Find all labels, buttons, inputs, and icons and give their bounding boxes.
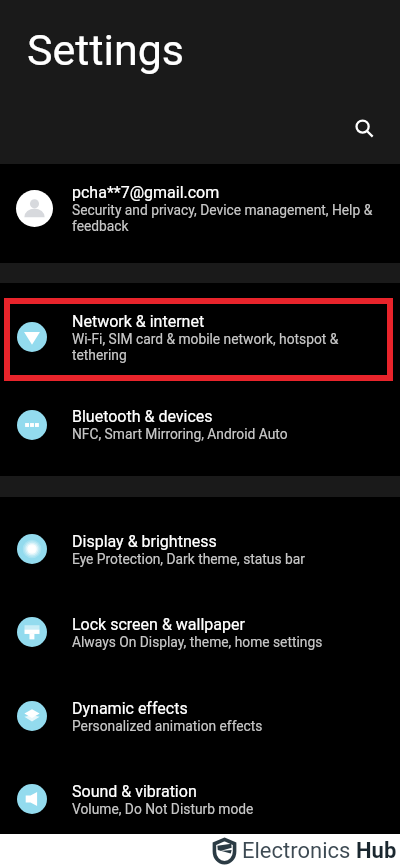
staticText: Sound & vibration <box>72 782 197 801</box>
staticText: Network & internet <box>72 312 205 331</box>
staticText: pcha**7@gmail.com <box>72 183 220 202</box>
button[interactable]: pcha**7@gmail.com <box>0 164 400 252</box>
button[interactable]: Search <box>344 108 384 148</box>
staticText: Display & brightness <box>72 532 217 551</box>
button[interactable]: Display & brightness <box>0 507 400 591</box>
staticText: NFC, Smart Mirroring, Android Auto <box>72 426 288 442</box>
staticText: Security and privacy, Device management,… <box>72 202 373 234</box>
button[interactable]: Lock screen & wallpaper <box>0 590 400 674</box>
button[interactable]: Sound & vibration <box>0 757 400 841</box>
staticText: Lock screen & wallpaper <box>72 615 245 634</box>
staticText: Wi-Fi, SIM card & mobile network, hotspo… <box>72 331 339 363</box>
button[interactable]: Bluetooth & devices <box>0 391 400 458</box>
staticText: Always On Display, theme, home settings <box>72 634 323 650</box>
button[interactable]: Network & internet <box>0 287 400 387</box>
staticText: Personalized animation effects <box>72 718 263 734</box>
staticText: Bluetooth & devices <box>72 407 213 426</box>
staticText: Eye Protection, Dark theme, status bar <box>72 551 305 567</box>
button[interactable]: Dynamic effects <box>0 674 400 758</box>
staticText: Hub <box>356 838 397 864</box>
staticText: Volume, Do Not Disturb mode <box>72 801 254 817</box>
staticText: Electronics <box>242 838 356 864</box>
staticText: Dynamic effects <box>72 699 188 718</box>
staticText: Settings <box>27 25 185 75</box>
